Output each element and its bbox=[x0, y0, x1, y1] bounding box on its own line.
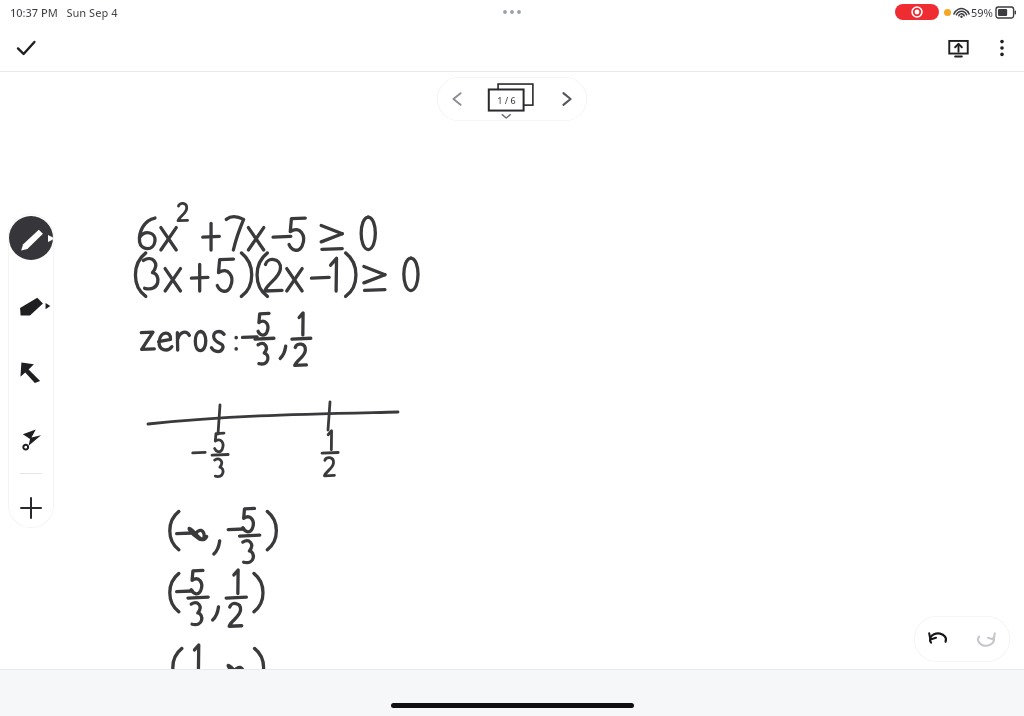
button[interactable]: Next page bbox=[547, 77, 587, 121]
button[interactable]: Undo bbox=[914, 616, 962, 662]
button[interactable]: Done bbox=[4, 26, 48, 70]
button[interactable]: Select bbox=[9, 350, 53, 394]
button[interactable]: Pen bbox=[9, 216, 53, 260]
staticText: 10:37 PM Sun Sep 4 bbox=[10, 5, 118, 20]
button[interactable]: Previous page bbox=[437, 77, 477, 121]
button[interactable]: Add tool bbox=[11, 488, 51, 528]
button[interactable]: More options bbox=[980, 26, 1024, 70]
button[interactable]: Page 1 of 6 bbox=[481, 77, 543, 121]
button[interactable]: Redo bbox=[962, 616, 1010, 662]
staticText: 1 / 6 bbox=[497, 94, 516, 106]
button[interactable]: Present to screen bbox=[936, 26, 980, 70]
button[interactable]: Eraser bbox=[9, 283, 53, 327]
button[interactable]: Lasso select bbox=[9, 417, 53, 461]
staticText: 59% bbox=[971, 5, 993, 20]
